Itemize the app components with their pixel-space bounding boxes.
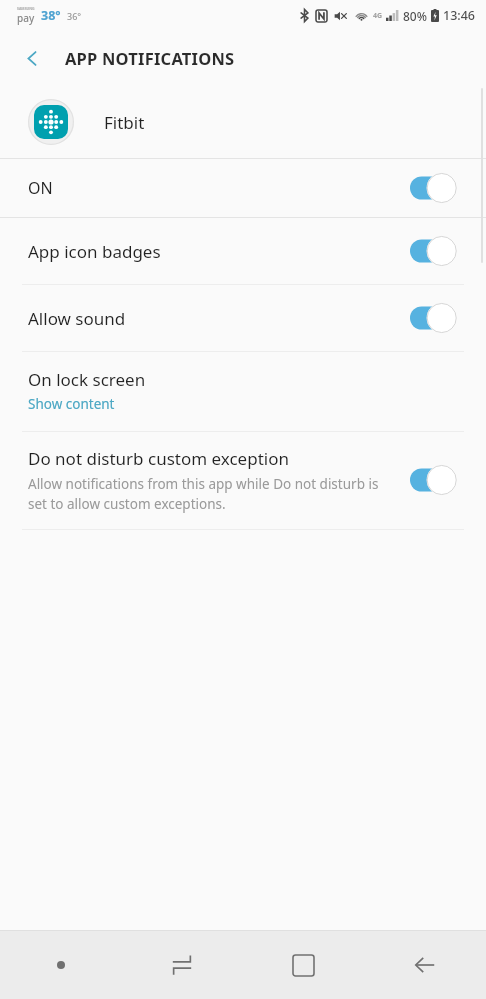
button[interactable]: Toggle (410, 235, 462, 267)
button[interactable]: ON (0, 159, 486, 217)
staticText: Fitbit (104, 111, 145, 134)
staticText: Show content (28, 395, 115, 413)
button[interactable]: Fitbit (0, 86, 486, 158)
staticText: Allow sound (28, 307, 410, 330)
staticText: pay (17, 11, 35, 25)
staticText: 13:46 (443, 7, 476, 24)
button[interactable]: Toggle (410, 172, 462, 204)
button[interactable]: Toggle (410, 464, 462, 496)
button[interactable]: Toggle (410, 302, 462, 334)
button[interactable]: Back (364, 931, 486, 999)
button[interactable]: Recents (121, 931, 242, 999)
staticText: APP NOTIFICATIONS (65, 47, 235, 69)
staticText: 38° (41, 7, 61, 24)
button[interactable]: Home (242, 931, 364, 999)
button[interactable]: App icon badges (0, 218, 486, 284)
button[interactable]: Do not disturb custom exception (0, 432, 486, 529)
button[interactable]: On lock screen (0, 352, 486, 431)
button[interactable]: Menu (0, 931, 121, 999)
staticText: Do not disturb custom exception (28, 447, 289, 470)
staticText: Allow notifications from this app while … (28, 475, 398, 513)
staticText: 36° (67, 10, 82, 22)
staticText: ON (28, 177, 410, 199)
staticText: On lock screen (28, 368, 146, 391)
button[interactable]: Navigate up (10, 36, 54, 80)
button[interactable]: Allow sound (0, 285, 486, 351)
staticText: App icon badges (28, 240, 410, 263)
staticText: 4G (373, 11, 383, 21)
staticText: SAMSUNG (17, 6, 35, 11)
staticText: 80% (403, 8, 427, 24)
